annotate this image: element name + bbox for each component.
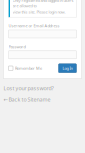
staticText: Lost your password? [3, 85, 53, 92]
staticText: view this site. Please login now. [12, 9, 65, 15]
staticText: Only registered and logged in users are … [12, 0, 73, 8]
button[interactable]: ← Back to Sitename [3, 96, 50, 103]
button[interactable]: Lost your password? [3, 85, 53, 92]
button[interactable]: Log In [58, 64, 76, 73]
staticText: Password [8, 44, 25, 49]
staticText: Remember Me [15, 66, 42, 71]
staticText: Log In [62, 66, 72, 71]
staticText: Username or Email Address [8, 23, 59, 28]
staticText: ← Back to Sitename [3, 96, 50, 103]
button[interactable]: Remember Me [8, 66, 42, 71]
